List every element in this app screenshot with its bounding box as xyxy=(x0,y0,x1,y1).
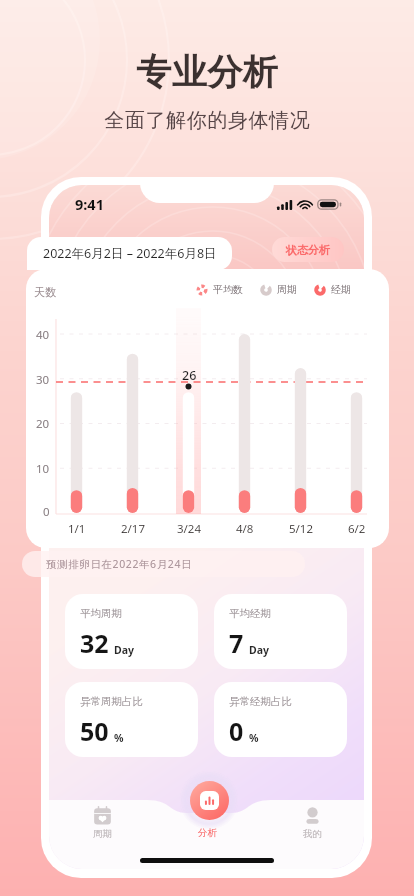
staticText: 7 xyxy=(229,626,244,660)
staticText: Day xyxy=(249,643,269,657)
staticText: 经期 xyxy=(331,283,351,296)
staticText: 异常经期占比 xyxy=(229,695,292,708)
staticText: 预测排卵日在2022年6月24日 xyxy=(46,557,193,571)
staticText: 9:41 xyxy=(75,194,104,214)
staticText: 6/2 xyxy=(348,521,366,537)
staticText: 5/12 xyxy=(289,521,314,537)
staticText: 专业分析 xyxy=(136,50,278,94)
button[interactable]: 我的 xyxy=(282,806,342,840)
staticText: 异常周期占比 xyxy=(80,695,143,708)
button[interactable]: 周期 xyxy=(260,283,297,296)
button[interactable]: 异常经期占比 xyxy=(214,682,347,757)
staticText: 平均周期 xyxy=(80,607,122,620)
button[interactable]: 平均经期 xyxy=(214,594,347,669)
staticText: 3/24 xyxy=(177,521,202,537)
staticText: 50 xyxy=(80,714,109,748)
button[interactable]: 分析 xyxy=(190,781,229,820)
staticText: 10 xyxy=(36,461,50,477)
staticText: 0 xyxy=(229,714,244,748)
button[interactable]: 平均数 xyxy=(196,283,243,296)
staticText: % xyxy=(114,731,124,745)
staticText: 天数 xyxy=(34,285,56,299)
staticText: % xyxy=(249,731,259,745)
staticText: Day xyxy=(114,643,134,657)
staticText: 0 xyxy=(43,504,50,520)
staticText: 平均经期 xyxy=(229,607,271,620)
button[interactable]: 分析 xyxy=(177,806,237,839)
staticText: 32 xyxy=(80,626,109,660)
staticText: 我的 xyxy=(303,828,322,840)
staticText: 周期 xyxy=(93,828,112,840)
staticText: 平均数 xyxy=(213,283,243,296)
staticText: 分析 xyxy=(198,827,217,839)
button[interactable]: 预测排卵日在2022年6月24日 xyxy=(22,551,305,577)
staticText: 2022年6月2日 – 2022年6月8日 xyxy=(43,245,217,262)
staticText: 40 xyxy=(36,327,50,343)
staticText: 状态分析 xyxy=(286,243,330,257)
staticText: 1/1 xyxy=(68,521,86,537)
button[interactable]: 异常周期占比 xyxy=(65,682,198,757)
staticText: 26 xyxy=(182,367,197,384)
button[interactable]: 2022年6月2日 – 2022年6月8日 xyxy=(27,237,232,270)
staticText: 30 xyxy=(36,372,50,388)
staticText: 4/8 xyxy=(236,521,254,537)
staticText: 2/17 xyxy=(121,521,146,537)
staticText: 全面了解你的身体情况 xyxy=(104,108,310,133)
button[interactable]: 经期 xyxy=(314,283,351,296)
staticText: 周期 xyxy=(277,283,297,296)
button[interactable]: 周期 xyxy=(72,806,132,840)
button[interactable]: 平均周期 xyxy=(65,594,198,669)
staticText: 20 xyxy=(36,416,50,432)
button[interactable]: 状态分析 xyxy=(272,237,344,262)
